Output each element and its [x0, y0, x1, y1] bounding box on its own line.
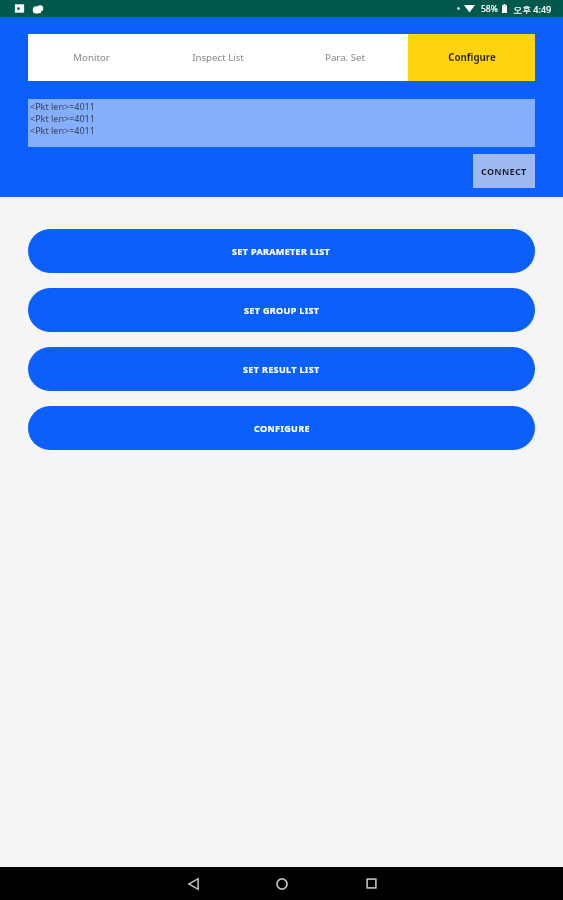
staticText: SET PARAMETER LIST	[232, 245, 331, 257]
button[interactable]: SET RESULT LIST	[28, 347, 535, 391]
button[interactable]: Configure	[408, 34, 535, 81]
button[interactable]: Home	[260, 867, 304, 900]
button[interactable]: SET GROUP LIST	[28, 288, 535, 332]
staticText: Monitor	[73, 51, 110, 64]
button[interactable]: Para. Set	[281, 34, 408, 81]
staticText: 오후 4:49	[513, 3, 552, 15]
staticText: <Pkt len>=4011	[30, 112, 95, 124]
button[interactable]: Recent apps	[349, 867, 393, 900]
staticText: SET RESULT LIST	[243, 363, 320, 375]
button[interactable]: Monitor	[28, 34, 154, 81]
staticText: CONFIGURE	[254, 422, 310, 434]
button[interactable]: Back	[171, 867, 215, 900]
button[interactable]: Inspect List	[154, 34, 281, 81]
button[interactable]: SET PARAMETER LIST	[28, 229, 535, 273]
staticText: 58%	[481, 3, 498, 15]
staticText: Inspect List	[192, 51, 244, 64]
staticText: CONNECT	[481, 165, 527, 177]
staticText: Configure	[448, 51, 496, 64]
button[interactable]: CONNECT	[473, 154, 535, 188]
staticText: SET GROUP LIST	[244, 304, 320, 316]
staticText: Para. Set	[325, 51, 365, 64]
staticText: <Pkt len>=4011	[30, 124, 95, 136]
button[interactable]: CONFIGURE	[28, 406, 535, 450]
staticText: <Pkt len>=4011	[30, 100, 95, 112]
